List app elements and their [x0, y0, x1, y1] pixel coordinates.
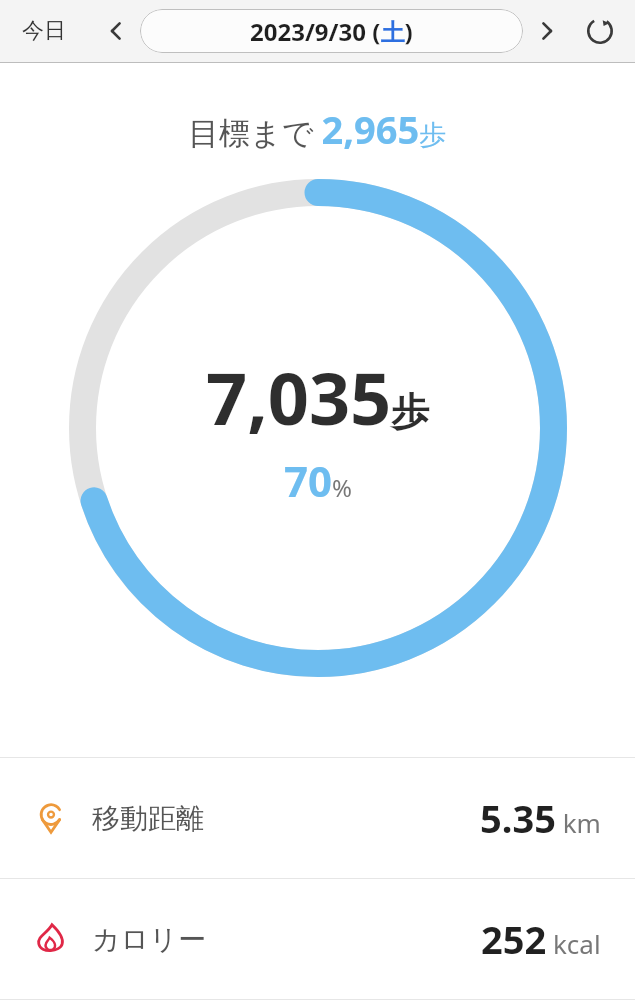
- button[interactable]: Next day: [529, 13, 565, 49]
- button[interactable]: Refresh: [579, 10, 621, 52]
- staticText: 2023/9/30 (土): [250, 15, 413, 48]
- button[interactable]: 今日: [14, 13, 74, 49]
- button[interactable]: カロリー: [0, 879, 635, 999]
- button[interactable]: 移動距離: [0, 758, 635, 878]
- staticText: 7,035歩: [206, 348, 430, 446]
- staticText: 70%: [284, 452, 352, 509]
- staticText: 5.35 km: [480, 792, 601, 844]
- staticText: 今日: [22, 17, 66, 45]
- button[interactable]: 2023/9/30 (土): [140, 9, 523, 53]
- staticText: 252 kcal: [481, 913, 601, 965]
- staticText: 移動距離: [92, 801, 204, 836]
- staticText: カロリー: [92, 922, 206, 957]
- button[interactable]: Previous day: [98, 13, 134, 49]
- staticText: 目標まで 2,965歩: [188, 103, 447, 155]
